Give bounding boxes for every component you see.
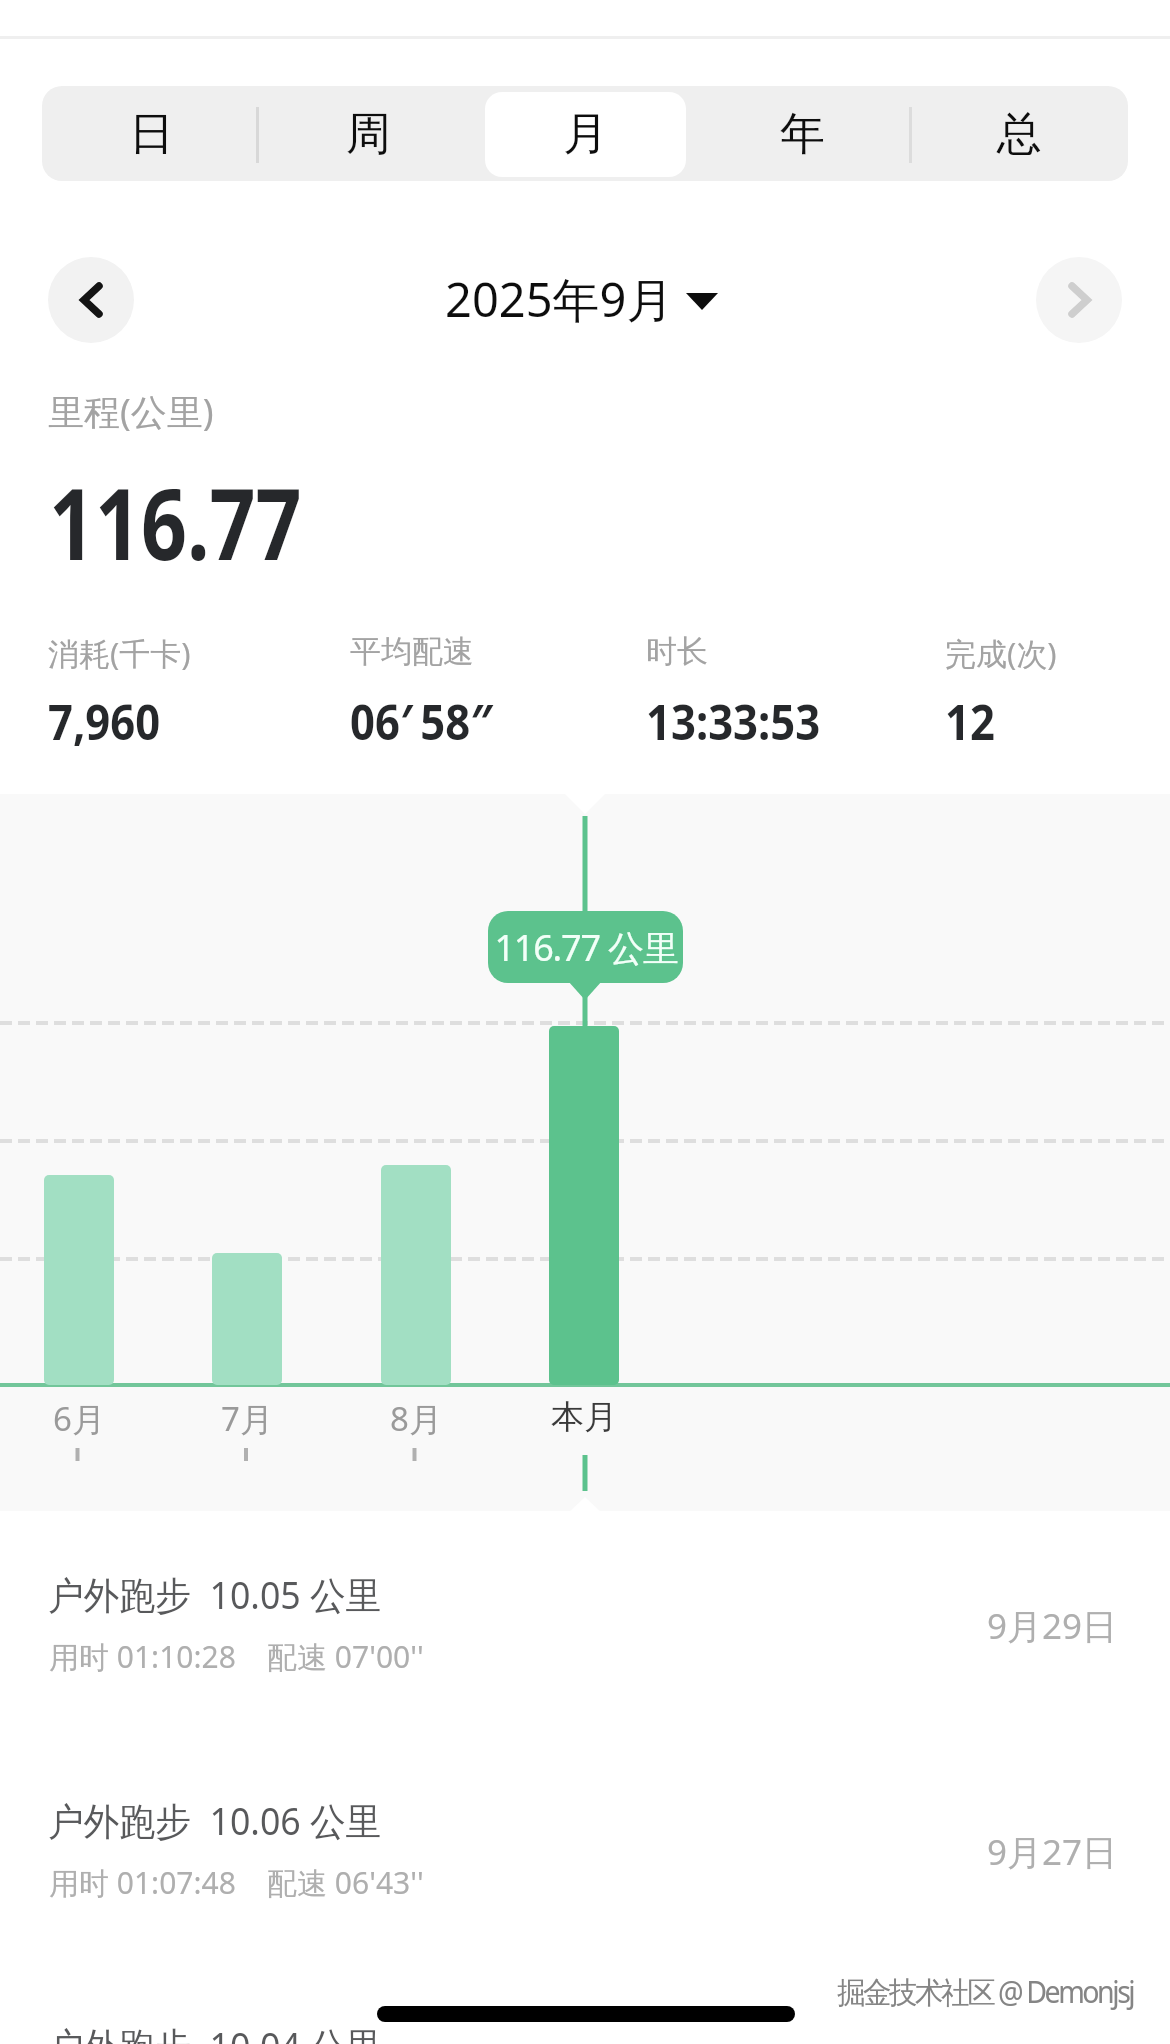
staticText: 7,960 (48, 688, 161, 755)
staticText: 掘金技术社区 @ Demonjsj (837, 1971, 1133, 2012)
staticText: 116.77 公里 (494, 923, 678, 972)
staticText: 9月29日 (987, 1602, 1118, 1650)
button[interactable]: 户外跑步 10.06 公里 (0, 1791, 1170, 2017)
button[interactable]: 2025年9月 (445, 267, 718, 329)
staticText: 9月27日 (987, 1828, 1118, 1876)
staticText: 8月 (351, 1396, 481, 1441)
staticText: 里程(公里) (48, 387, 214, 436)
button[interactable]: Previous month (48, 257, 134, 343)
button[interactable]: 户外跑步 10.04 公里 (0, 2016, 1170, 2044)
staticText: 户外跑步 10.05 公里 (48, 1568, 382, 1620)
staticText: 平均配速 (350, 632, 474, 671)
staticText: 7月 (182, 1396, 312, 1441)
staticText: 户外跑步 10.04 公里 (48, 2019, 382, 2044)
staticText: 日 (129, 106, 174, 163)
button[interactable]: 户外跑步 10.05 公里 (0, 1565, 1170, 1791)
button[interactable]: 月 (485, 92, 686, 177)
staticText: 6月 (14, 1396, 144, 1441)
button[interactable]: Next month (1036, 257, 1122, 343)
staticText: 户外跑步 10.06 公里 (48, 1794, 382, 1846)
button[interactable]: 周 (268, 92, 469, 177)
staticText: 本月 (519, 1396, 649, 1438)
staticText: 周 (346, 106, 391, 163)
staticText: 完成(次) (945, 632, 1057, 674)
staticText: 月 (563, 106, 608, 163)
staticText: 时长 (646, 632, 708, 671)
button[interactable]: 年 (702, 92, 903, 177)
staticText: 06′ 58″ (350, 688, 493, 755)
staticText: 用时 01:07:48 配速 06'43'' (49, 1862, 424, 1903)
staticText: 116.77 (49, 455, 302, 588)
staticText: 用时 01:10:28 配速 07'00'' (49, 1636, 424, 1677)
staticText: 年 (780, 106, 825, 163)
button[interactable]: 日 (50, 92, 252, 177)
staticText: 消耗(千卡) (48, 632, 191, 674)
staticText: 13:33:53 (646, 688, 820, 755)
staticText: 总 (997, 106, 1042, 163)
staticText: 2025年9月 (445, 267, 674, 329)
staticText: 12 (945, 688, 996, 755)
button[interactable]: 总 (919, 92, 1120, 177)
